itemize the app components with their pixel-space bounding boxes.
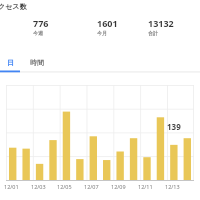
staticText: 12/13 — [165, 183, 180, 190]
staticText: 今月 — [97, 30, 107, 36]
staticText: 12/07 — [84, 183, 99, 190]
staticText: 今週 — [33, 30, 43, 36]
button[interactable]: 日 — [0, 53, 20, 72]
button[interactable]: 時間 — [20, 53, 54, 72]
staticText: 合計 — [148, 30, 158, 36]
staticText: 12/09 — [111, 183, 126, 190]
staticText: 12/03 — [31, 183, 46, 190]
staticText: 時間 — [30, 58, 44, 67]
staticText: 139 — [167, 121, 181, 132]
staticText: 12/05 — [57, 183, 72, 190]
staticText: 日 — [7, 58, 14, 67]
staticText: 1601 — [97, 17, 118, 29]
staticText: 12/01 — [4, 183, 19, 190]
staticText: 13132 — [148, 17, 174, 29]
staticText: クセス数 — [0, 2, 27, 11]
staticText: 12/11 — [138, 183, 153, 190]
staticText: 776 — [33, 17, 49, 29]
